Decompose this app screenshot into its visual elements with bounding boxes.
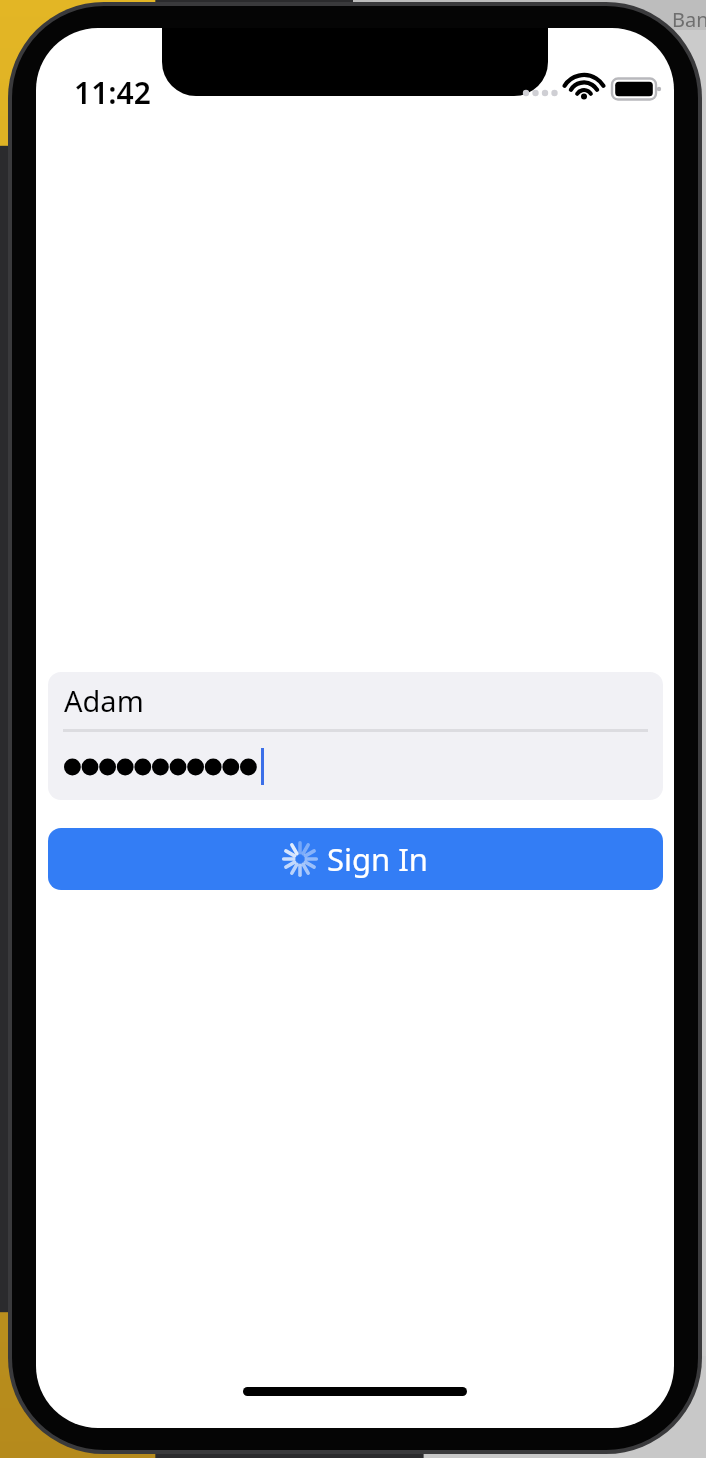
other: Loading (283, 842, 317, 876)
button[interactable]: Loading (48, 828, 663, 890)
staticText: Ban (672, 6, 706, 33)
button[interactable] (48, 732, 663, 800)
staticText: Sign In (327, 838, 428, 880)
button[interactable]: Adam (48, 672, 663, 729)
staticText: Adam (64, 681, 144, 720)
staticText: 11:42 (74, 72, 151, 113)
